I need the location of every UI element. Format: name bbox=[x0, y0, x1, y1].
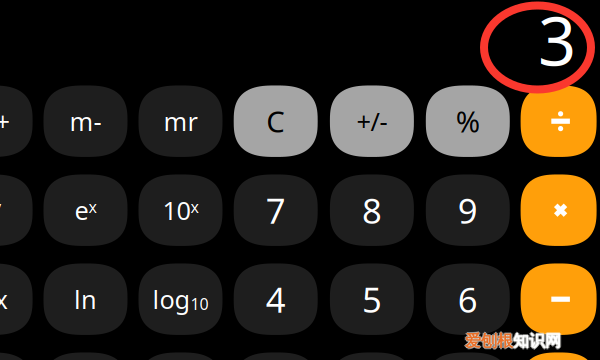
button[interactable]: Sine bbox=[43, 352, 127, 360]
staticText: 爱刨根 bbox=[465, 331, 513, 351]
staticText: 8 bbox=[362, 187, 382, 233]
staticText: ln bbox=[74, 282, 97, 316]
button[interactable]: Two bbox=[330, 352, 414, 360]
staticText: 爱刨根知识网 bbox=[464, 331, 560, 351]
staticText: 爱刨根知识网 bbox=[465, 332, 561, 352]
staticText: m+ bbox=[0, 104, 10, 138]
button[interactable]: Nine bbox=[426, 174, 510, 246]
staticText: 3 bbox=[538, 0, 576, 84]
button[interactable]: Percent bbox=[426, 85, 510, 157]
staticText: xy bbox=[0, 193, 1, 227]
button[interactable]: Clear bbox=[234, 85, 318, 157]
button[interactable]: y-th root of x bbox=[0, 263, 33, 335]
button[interactable]: Four bbox=[234, 263, 318, 335]
staticText: 5 bbox=[362, 276, 382, 322]
button[interactable]: Divide bbox=[521, 85, 597, 157]
staticText: m- bbox=[69, 104, 101, 138]
staticText: 4 bbox=[266, 276, 286, 322]
button[interactable]: One bbox=[234, 352, 318, 360]
button[interactable]: Cosine bbox=[138, 352, 222, 360]
staticText: log10 bbox=[152, 282, 208, 316]
button[interactable]: Add bbox=[521, 352, 597, 360]
staticText: 爱刨根知识网 bbox=[466, 331, 562, 351]
staticText: 爱刨根知识网 bbox=[465, 330, 561, 350]
staticText: 10x bbox=[162, 193, 198, 227]
staticText: 知识网 bbox=[513, 331, 561, 351]
staticText: mr bbox=[163, 104, 197, 138]
staticText: 7 bbox=[266, 187, 286, 233]
staticText: 6 bbox=[458, 276, 478, 322]
staticText: 9 bbox=[458, 187, 478, 233]
button[interactable]: Function bbox=[0, 352, 33, 360]
button[interactable]: Natural logarithm bbox=[43, 263, 127, 335]
staticText: ʸ√x bbox=[0, 282, 8, 316]
button[interactable]: Memory recall bbox=[138, 85, 222, 157]
button[interactable]: Logarithm base ten bbox=[138, 263, 222, 335]
button[interactable]: Plus minus bbox=[330, 85, 414, 157]
button[interactable]: Ten to the power x bbox=[138, 174, 222, 246]
button[interactable]: Multiply bbox=[521, 174, 597, 246]
button[interactable]: Five bbox=[330, 263, 414, 335]
staticText: C bbox=[266, 102, 285, 141]
button[interactable]: Three bbox=[426, 352, 510, 360]
button[interactable]: Six bbox=[426, 263, 510, 335]
staticText: ex bbox=[74, 193, 96, 227]
staticText: % bbox=[456, 102, 480, 141]
staticText: +/- bbox=[356, 104, 387, 138]
button[interactable]: Seven bbox=[234, 174, 318, 246]
button[interactable]: x to the power y bbox=[0, 174, 33, 246]
button[interactable]: Subtract bbox=[521, 263, 597, 335]
button[interactable]: e to the power x bbox=[43, 174, 127, 246]
button[interactable]: Eight bbox=[330, 174, 414, 246]
button[interactable]: Memory subtract bbox=[43, 85, 127, 157]
button[interactable]: Memory add bbox=[0, 85, 33, 157]
